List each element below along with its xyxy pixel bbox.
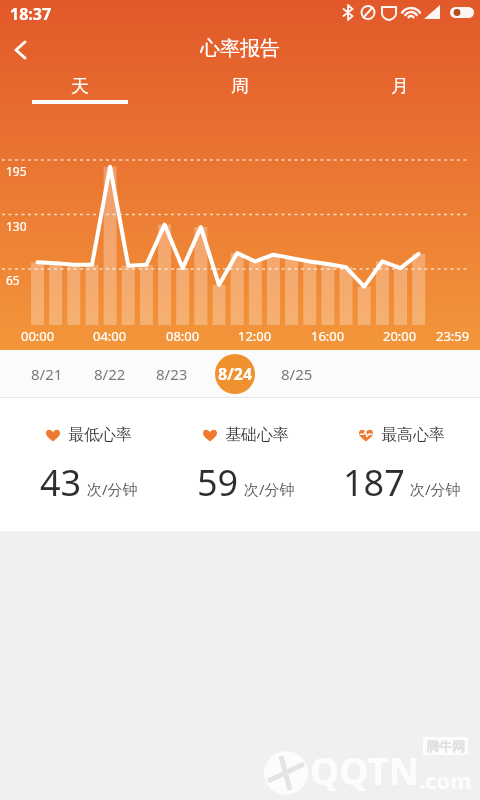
- staticText: 8/23: [156, 364, 188, 384]
- staticText: 心率报告: [200, 36, 280, 61]
- staticText: 00:00: [21, 327, 55, 345]
- staticText: 次/分钟: [87, 479, 138, 499]
- staticText: 08:00: [166, 327, 200, 345]
- staticText: 16:00: [311, 327, 345, 345]
- button[interactable]: 基础心率: [167, 398, 324, 531]
- button[interactable]: 周: [160, 72, 320, 110]
- staticText: 周: [231, 75, 249, 98]
- button[interactable]: 8/23: [152, 354, 192, 394]
- staticText: 18:37: [10, 3, 52, 25]
- staticText: 59: [197, 458, 239, 507]
- button[interactable]: 8/25: [277, 354, 317, 394]
- staticText: 65: [6, 272, 20, 288]
- staticText: 8/24: [218, 363, 253, 385]
- staticText: 23:59: [436, 327, 470, 345]
- staticText: 基础心率: [225, 425, 289, 445]
- staticText: 天: [71, 75, 89, 98]
- staticText: 20:00: [383, 327, 417, 345]
- staticText: 187: [343, 458, 405, 507]
- staticText: 195: [6, 163, 27, 179]
- staticText: 次/分钟: [410, 479, 461, 499]
- staticText: 腾牛网: [426, 738, 465, 754]
- button[interactable]: [3, 32, 39, 68]
- staticText: 月: [391, 75, 409, 98]
- staticText: 8/25: [281, 364, 313, 384]
- staticText: .com: [419, 765, 472, 795]
- staticText: 次/分钟: [244, 479, 295, 499]
- staticText: 8/21: [31, 364, 63, 384]
- button[interactable]: 最高心率: [324, 398, 480, 531]
- staticText: 12:00: [238, 327, 272, 345]
- button[interactable]: 天: [0, 72, 160, 110]
- staticText: QQTN: [310, 745, 419, 795]
- button[interactable]: 月: [320, 72, 480, 110]
- staticText: 04:00: [93, 327, 127, 345]
- button[interactable]: 8/21: [27, 354, 67, 394]
- staticText: 130: [6, 218, 27, 234]
- staticText: 8/22: [94, 364, 126, 384]
- button[interactable]: 8/22: [90, 354, 130, 394]
- button[interactable]: 最低心率: [10, 398, 167, 531]
- staticText: 最高心率: [381, 425, 445, 445]
- staticText: 最低心率: [68, 425, 132, 445]
- staticText: 43: [40, 458, 82, 507]
- button[interactable]: 8/24: [215, 354, 255, 394]
